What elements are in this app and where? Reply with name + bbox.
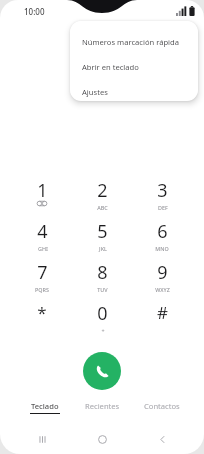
button[interactable]: 7 xyxy=(15,260,69,298)
button[interactable]: Contactos xyxy=(130,401,194,423)
staticText: 9 xyxy=(157,260,168,285)
button[interactable]: 3 xyxy=(135,178,189,216)
button[interactable]: Teclado xyxy=(13,401,77,423)
button[interactable]: 9 xyxy=(135,260,189,298)
staticText: JKL xyxy=(99,245,107,252)
staticText: 0 xyxy=(97,301,108,326)
staticText: Contactos xyxy=(144,401,180,411)
button[interactable]: Abrir en teclado xyxy=(70,54,198,79)
staticText: DEF xyxy=(158,204,168,211)
button[interactable]: Atrás xyxy=(142,425,182,454)
staticText: Recientes xyxy=(85,401,120,411)
button[interactable]: 1 xyxy=(15,178,69,216)
staticText: 6 xyxy=(157,219,168,244)
staticText: PQRS xyxy=(35,286,49,293)
staticText: 5 xyxy=(97,219,108,244)
button[interactable]: Llamar xyxy=(83,352,121,390)
button[interactable]: 5 xyxy=(75,219,129,257)
staticText: GHI xyxy=(38,245,48,252)
button[interactable]: # xyxy=(135,301,189,339)
staticText: 3 xyxy=(157,178,168,203)
staticText: Números marcación rápida xyxy=(82,37,179,47)
staticText: 4 xyxy=(37,219,48,244)
staticText: Abrir en teclado xyxy=(82,62,139,72)
staticText: WXYZ xyxy=(155,286,170,293)
button[interactable]: Recientes xyxy=(22,425,62,454)
staticText: 7 xyxy=(37,260,48,285)
button[interactable]: 4 xyxy=(15,219,69,257)
staticText: TUV xyxy=(97,286,108,293)
staticText: 10:00 xyxy=(24,6,45,17)
staticText: ABC xyxy=(97,204,108,211)
staticText: + xyxy=(101,327,105,334)
button[interactable]: Inicio xyxy=(82,425,122,454)
staticText: # xyxy=(157,301,168,324)
button[interactable]: Números marcación rápida xyxy=(70,29,198,54)
staticText: 1 xyxy=(37,178,48,203)
staticText: Ajustes xyxy=(82,87,108,97)
staticText: Teclado xyxy=(31,401,59,411)
staticText: 2 xyxy=(97,178,108,203)
staticText: * xyxy=(37,301,47,324)
button[interactable]: Recientes xyxy=(70,401,134,423)
button[interactable]: 2 xyxy=(75,178,129,216)
button[interactable]: * xyxy=(15,301,69,339)
button[interactable]: 6 xyxy=(135,219,189,257)
button[interactable]: Ajustes xyxy=(70,79,198,101)
staticText: 8 xyxy=(97,260,108,285)
button[interactable]: 0 xyxy=(75,301,129,339)
button[interactable]: 8 xyxy=(75,260,129,298)
staticText: MNO xyxy=(155,245,169,252)
